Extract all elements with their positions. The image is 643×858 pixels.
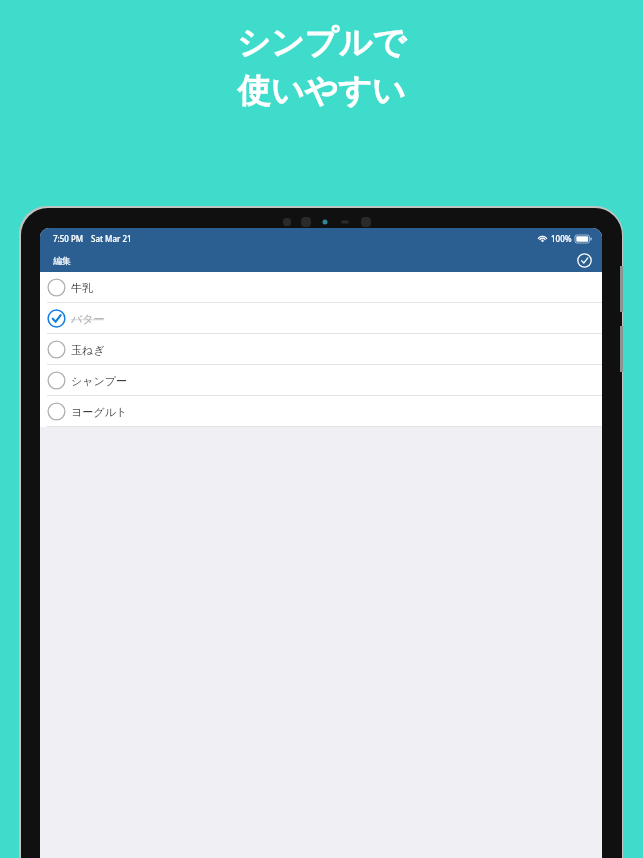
button[interactable]: 玉ねぎ: [40, 334, 602, 365]
staticText: ヨーグルト: [71, 405, 128, 419]
staticText: 牛乳: [71, 281, 93, 295]
button[interactable]: 編集: [40, 251, 84, 270]
staticText: 100%: [551, 233, 572, 244]
staticText: 7:50 PM: [53, 233, 84, 244]
staticText: バター: [71, 312, 105, 326]
button[interactable]: 完了: [574, 250, 594, 270]
button[interactable]: 牛乳: [40, 272, 602, 303]
staticText: 編集: [53, 255, 71, 266]
staticText: シャンプー: [71, 374, 128, 388]
staticText: Sat Mar 21: [91, 233, 132, 244]
staticText: 玉ねぎ: [71, 343, 105, 357]
button[interactable]: バター: [40, 303, 602, 334]
staticText: 使いやすい: [237, 70, 406, 112]
staticText: シンプルで: [237, 22, 406, 64]
button[interactable]: シャンプー: [40, 365, 602, 396]
button[interactable]: ヨーグルト: [40, 396, 602, 427]
